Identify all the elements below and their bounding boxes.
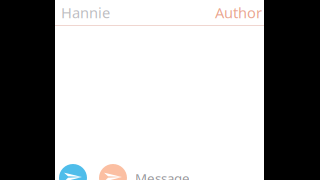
- staticText: Message: [135, 169, 190, 180]
- button[interactable]: Hannie: [61, 3, 110, 22]
- staticText: Author: [215, 3, 262, 22]
- button[interactable]: Send: [59, 164, 87, 180]
- button[interactable]: Share: [99, 164, 127, 180]
- button[interactable]: Author: [215, 3, 262, 22]
- staticText: Hannie: [61, 3, 110, 22]
